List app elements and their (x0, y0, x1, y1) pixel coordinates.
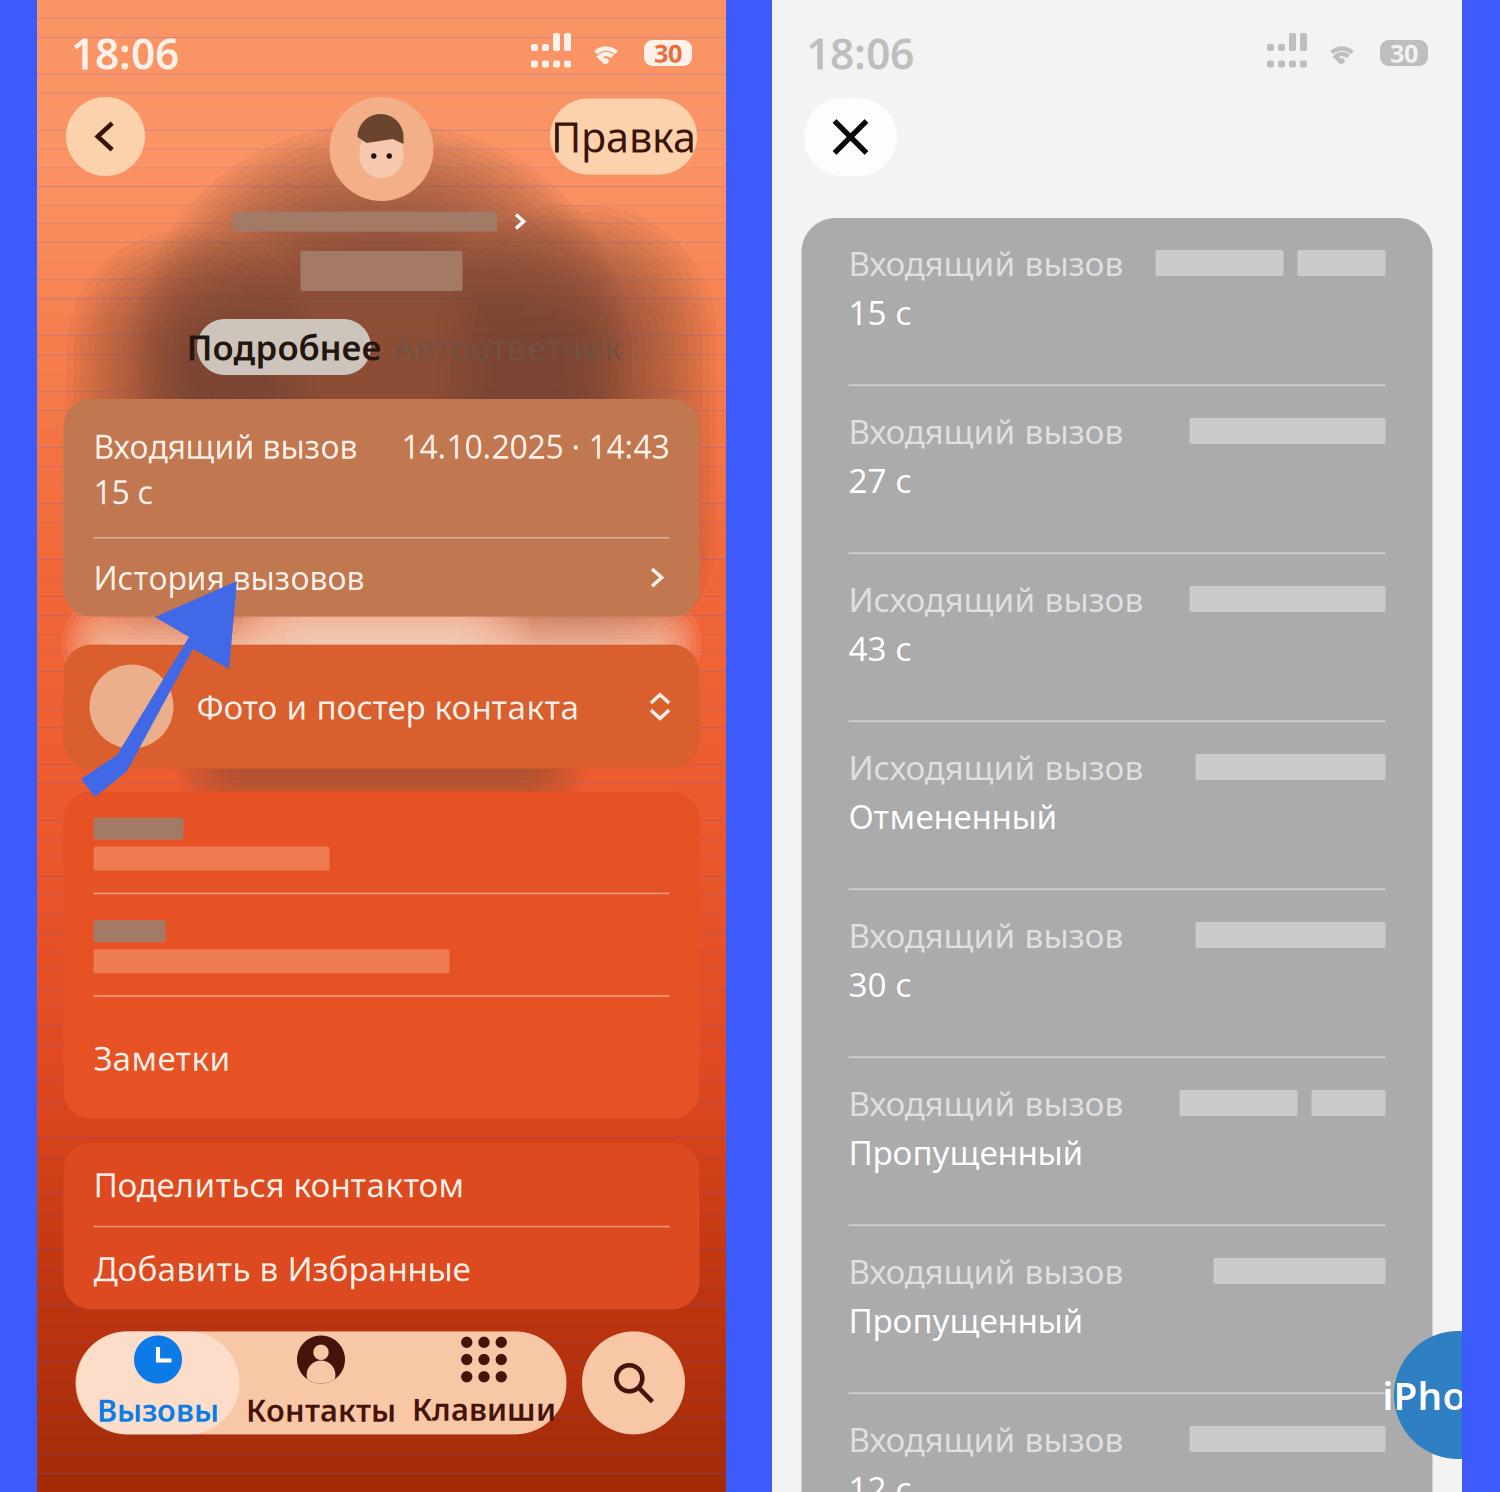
staticText: 18:06 (806, 25, 914, 81)
button[interactable]: Правка (550, 98, 697, 174)
staticText: 30 (1390, 36, 1418, 70)
staticText: 30 (654, 36, 682, 70)
staticText: Добавить в Избранные (93, 1246, 470, 1291)
staticText: Пропущенный (848, 1298, 1083, 1342)
staticText: Входящий вызов (93, 425, 357, 467)
staticText: Входящий вызов (848, 1081, 1123, 1125)
button[interactable]: Клавиши (402, 1331, 565, 1434)
staticText: Подробнее (186, 324, 381, 370)
button[interactable]: Поделиться контактом (63, 1143, 699, 1226)
staticText: Входящий вызов (848, 241, 1123, 285)
button[interactable]: Search (579, 1331, 687, 1434)
staticText: Контакты (246, 1389, 396, 1430)
staticText: 27 с (848, 458, 911, 502)
staticText: Заметки (93, 1036, 230, 1080)
button[interactable]: Заметки (63, 997, 699, 1119)
button[interactable]: Close (804, 98, 897, 176)
staticText: 15 с (848, 290, 911, 334)
staticText: Автоответчик (393, 324, 622, 370)
staticText: 14.10.2025 · 14:43 (401, 425, 669, 467)
staticText: Входящий вызов (848, 913, 1123, 957)
staticText: Клавиши (412, 1388, 556, 1429)
staticText: Входящий вызов (848, 1249, 1123, 1293)
staticText: Исходящий вызов (848, 745, 1143, 789)
staticText: 12 с (848, 1466, 911, 1492)
staticText: Входящий вызов (848, 409, 1123, 453)
staticText: Правка (551, 109, 696, 164)
button[interactable]: Добавить в Избранные (63, 1227, 699, 1309)
staticText: Вызовы (97, 1389, 219, 1430)
button[interactable]: Подробнее (197, 319, 371, 375)
staticText: iPhones (1382, 1369, 1500, 1421)
staticText: 18:06 (71, 25, 179, 81)
button[interactable]: Back (66, 97, 145, 176)
staticText: История вызовов (93, 556, 364, 599)
button[interactable]: Вызовы (76, 1331, 239, 1434)
button[interactable]: Контакты (239, 1331, 402, 1434)
button[interactable]: Contact photo (329, 97, 433, 201)
button[interactable]: Фото и постер контакта (63, 645, 699, 769)
staticText: Фото и постер контакта (196, 684, 579, 729)
button[interactable]: История вызовов (63, 539, 699, 617)
staticText: Пропущенный (848, 1130, 1083, 1174)
staticText: Отмененный (848, 794, 1057, 838)
staticText: Исходящий вызов (848, 577, 1143, 621)
staticText: Входящий вызов (848, 1417, 1123, 1461)
staticText: 30 с (848, 962, 911, 1006)
staticText: 43 с (848, 626, 911, 670)
staticText: Поделиться контактом (93, 1162, 464, 1206)
staticText: 15 с (93, 470, 153, 513)
